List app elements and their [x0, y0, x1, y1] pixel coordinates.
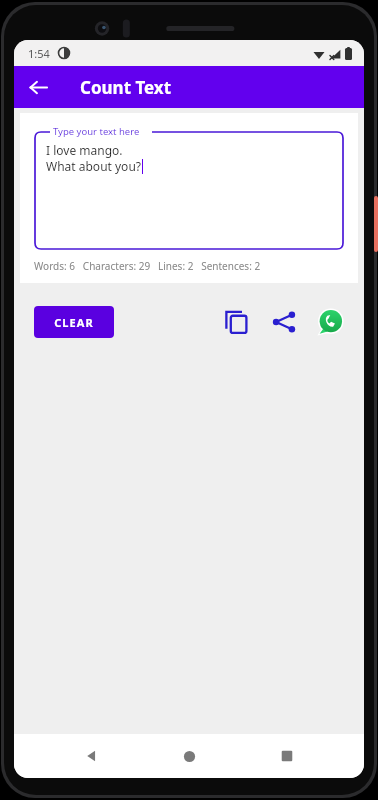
button[interactable]: Copy	[219, 305, 253, 339]
button[interactable]: Share	[267, 305, 301, 339]
staticText: CLEAR	[54, 315, 94, 330]
button[interactable]: Home	[169, 736, 209, 776]
button[interactable]: CLEAR	[34, 306, 114, 338]
staticText: Count Text	[80, 76, 172, 99]
staticText: Type your text here	[53, 125, 140, 138]
staticText: What about you?	[46, 158, 142, 174]
button[interactable]: Back	[22, 71, 54, 103]
button[interactable]: Share to WhatsApp	[314, 306, 346, 338]
button[interactable]: Back	[72, 736, 112, 776]
staticText: I love mango.	[46, 142, 123, 158]
staticText: 1:54	[28, 46, 50, 61]
staticText: Words: 6 Characters: 29 Lines: 2 Sentenc…	[34, 259, 261, 273]
button[interactable]: Recents	[267, 736, 307, 776]
